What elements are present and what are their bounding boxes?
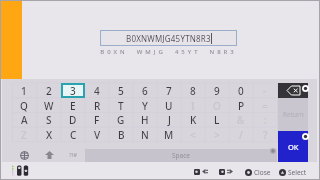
button[interactable]: Move left (194, 169, 200, 175)
staticText: B (118, 128, 125, 142)
staticText: 0 (238, 84, 244, 98)
button[interactable]: 4 (85, 83, 109, 98)
button[interactable]: Language (12, 148, 36, 162)
button[interactable]: 6 (133, 83, 157, 98)
button[interactable]: & (229, 112, 253, 127)
staticText: J (168, 113, 171, 127)
staticText: X (46, 128, 53, 142)
button[interactable]: OK (278, 131, 308, 162)
staticText: E (70, 99, 76, 113)
staticText: L (214, 113, 220, 127)
staticText: Close (254, 168, 271, 177)
button[interactable]: Select (279, 168, 307, 177)
button[interactable]: Y (133, 98, 157, 113)
staticText: OK (288, 142, 299, 152)
button[interactable]: V (85, 127, 109, 142)
button[interactable]: Close (245, 168, 271, 177)
staticText: > (214, 128, 220, 142)
staticText: < (190, 128, 196, 142)
button[interactable]: 1 (12, 83, 36, 98)
button[interactable]: P (229, 98, 253, 113)
button[interactable]: T (109, 98, 133, 113)
staticText: B0XNWMJG45YTN8R3 (126, 33, 211, 44)
button[interactable]: Shift (37, 148, 61, 162)
button[interactable]: O (205, 98, 229, 113)
button[interactable]: ?!# (61, 148, 85, 162)
button[interactable]: 0 (229, 83, 253, 98)
button[interactable]: Return (278, 98, 308, 131)
staticText: F (94, 113, 100, 127)
button[interactable]: 5 (109, 83, 133, 98)
staticText: 5 (118, 84, 124, 98)
button[interactable]: M (157, 127, 181, 142)
button[interactable]: X (37, 127, 61, 142)
staticText: N (141, 128, 149, 142)
button[interactable]: Q (12, 98, 36, 113)
staticText: 9 (214, 84, 220, 98)
button[interactable]: 9 (205, 83, 229, 98)
staticText: W (44, 99, 54, 113)
staticText: B0XN WMJG 45YT N8R3 (100, 48, 237, 56)
button[interactable]: C (61, 127, 85, 142)
staticText: Return (283, 110, 304, 119)
staticText: R (94, 99, 101, 113)
staticText: - (263, 84, 267, 98)
staticText: P (238, 99, 245, 113)
staticText: K (190, 113, 197, 127)
button[interactable]: W (37, 98, 61, 113)
button[interactable]: 2 (37, 83, 61, 98)
staticText: 1 (21, 84, 27, 98)
button[interactable]: K (181, 112, 205, 127)
staticText: 7 (166, 84, 172, 98)
staticText: Z (21, 128, 27, 142)
staticText: S (46, 113, 52, 127)
staticText: Y (142, 99, 148, 113)
staticText: 8 (190, 84, 196, 98)
staticText: M (164, 128, 174, 142)
button[interactable]: N (133, 127, 157, 142)
staticText: / (239, 128, 243, 142)
button[interactable]: B (109, 127, 133, 142)
staticText: O (213, 99, 221, 113)
staticText: T (118, 99, 124, 113)
button[interactable]: R (85, 98, 109, 113)
staticText: 3 (70, 84, 76, 98)
button[interactable]: L (205, 112, 229, 127)
button[interactable]: U (157, 98, 181, 113)
button[interactable]: E (61, 98, 85, 113)
staticText: Q (20, 99, 28, 113)
button[interactable]: J (157, 112, 181, 127)
button[interactable]: Z (12, 127, 36, 142)
button[interactable]: G (109, 112, 133, 127)
button[interactable]: B0XNWMJG45YTN8R3 (100, 30, 237, 46)
staticText: G (117, 113, 125, 127)
button[interactable]: D (61, 112, 85, 127)
button[interactable]: 7 (157, 83, 181, 98)
button[interactable]: Backspace (278, 83, 308, 98)
staticText: = (262, 99, 268, 113)
button[interactable]: A (12, 112, 36, 127)
staticText: V (94, 128, 101, 142)
staticText: 6 (142, 84, 148, 98)
button[interactable]: S (37, 112, 61, 127)
button[interactable]: 8 (181, 83, 205, 98)
staticText: : (264, 113, 267, 127)
staticText: A (21, 113, 28, 127)
button[interactable]: Move right (219, 169, 225, 175)
button[interactable]: H (133, 112, 157, 127)
staticText: Space (172, 151, 190, 160)
button[interactable]: 3 (61, 83, 85, 98)
staticText: D (69, 113, 77, 127)
button[interactable]: Space (85, 149, 277, 162)
button[interactable]: F (85, 112, 109, 127)
staticText: C (70, 128, 77, 142)
staticText: 4 (94, 84, 100, 98)
